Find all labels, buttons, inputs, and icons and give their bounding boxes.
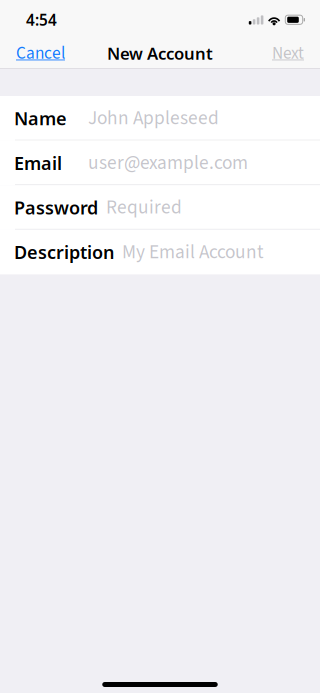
staticText: 4:54	[26, 9, 57, 30]
button[interactable]: Next	[260, 38, 320, 68]
button[interactable]: Name	[0, 96, 320, 141]
staticText: John Appleseed	[88, 104, 219, 132]
staticText: Email	[14, 151, 62, 175]
button[interactable]: Password	[0, 185, 320, 230]
staticText: Password	[14, 195, 98, 220]
staticText: My Email Account	[122, 238, 264, 266]
button[interactable]: Email	[0, 141, 320, 185]
button[interactable]: Description	[0, 230, 320, 274]
staticText: user@example.com	[88, 149, 248, 177]
staticText: Next	[272, 41, 304, 66]
staticText: Name	[14, 106, 67, 130]
staticText: Description	[14, 240, 114, 264]
staticText: New Account	[107, 42, 213, 65]
staticText: Required	[106, 194, 182, 221]
staticText: Cancel	[16, 41, 65, 66]
button[interactable]: Cancel	[0, 38, 77, 68]
